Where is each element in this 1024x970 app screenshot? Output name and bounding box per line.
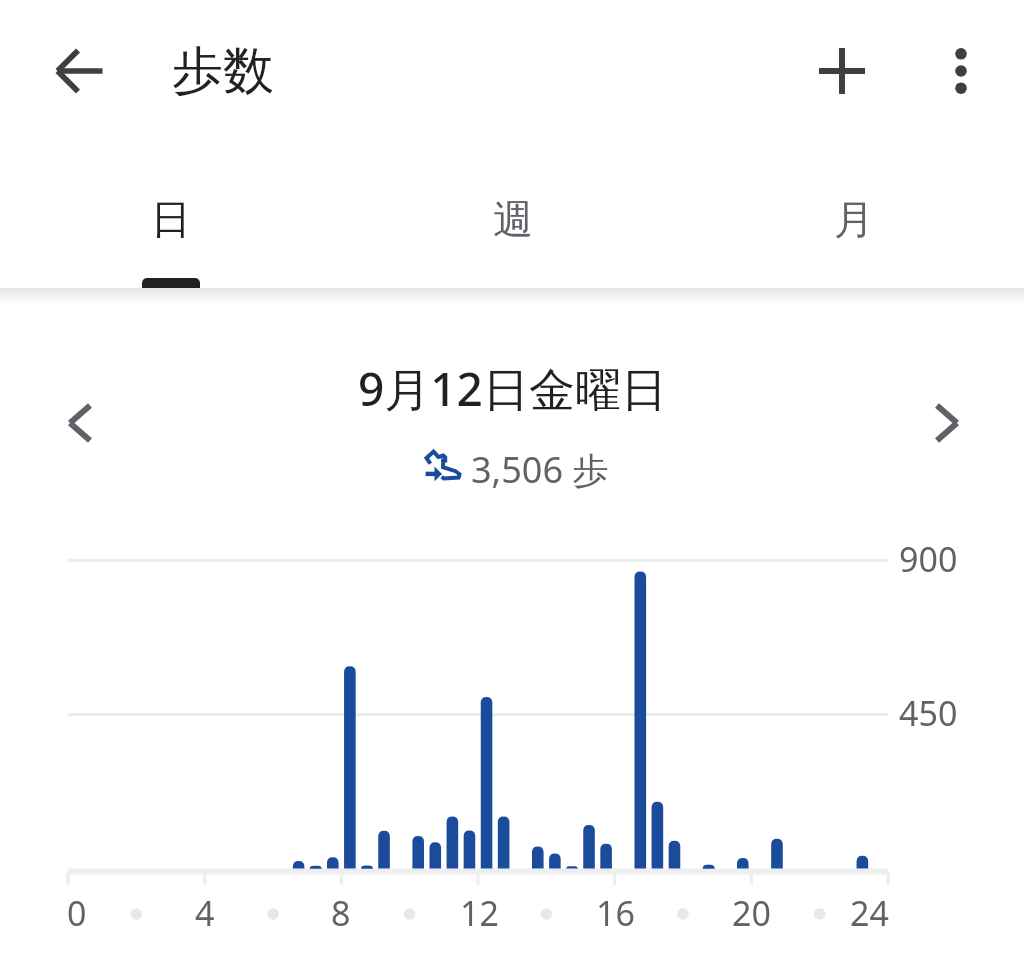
staticText: 歩数 (172, 39, 274, 103)
staticText: 3,506 歩 (471, 445, 609, 494)
button[interactable]: 週 (342, 145, 683, 288)
button[interactable]: 日 (0, 145, 342, 288)
staticText: 4 (195, 890, 215, 936)
staticText: 8 (331, 890, 351, 936)
staticText: 900 (899, 536, 958, 582)
staticText: 24 (850, 890, 889, 936)
staticText: 16 (596, 890, 635, 936)
staticText: 20 (732, 890, 771, 936)
staticText: 週 (493, 194, 533, 244)
button[interactable]: Previous day (47, 391, 111, 455)
staticText: 9月12日金曜日 (358, 357, 667, 420)
staticText: 日 (151, 194, 191, 244)
button[interactable]: Back (48, 39, 112, 103)
staticText: 450 (899, 690, 958, 736)
button[interactable]: Next day (916, 391, 980, 455)
button[interactable]: 月 (683, 145, 1024, 288)
staticText: 月 (834, 194, 874, 244)
staticText: 12 (460, 890, 499, 936)
button[interactable]: Add (810, 39, 874, 103)
button[interactable]: More options (929, 39, 993, 103)
staticText: 0 (67, 890, 87, 936)
